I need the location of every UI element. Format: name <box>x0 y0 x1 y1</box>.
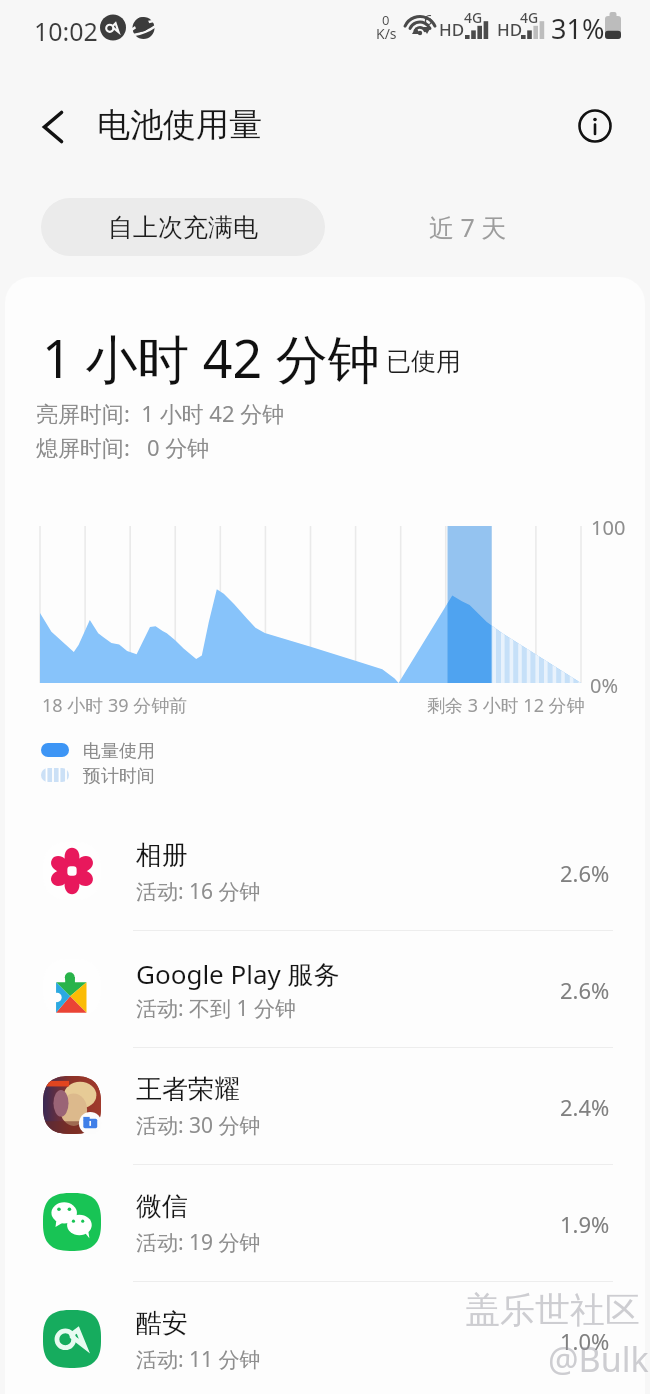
staticText: 活动: 16 分钟 <box>136 877 261 906</box>
staticText: 亮屏时间: 1 小时 42 分钟 <box>36 398 285 428</box>
staticText: 31% <box>551 10 605 47</box>
staticText: 100 <box>591 514 626 541</box>
staticText: 2.6% <box>560 858 610 888</box>
button[interactable]: 微信 <box>0 1165 650 1282</box>
staticText: 4G <box>464 8 483 27</box>
staticText: 0% <box>590 672 619 699</box>
staticText: 酷安 <box>136 1307 188 1340</box>
staticText: 预计时间 <box>83 765 155 788</box>
staticText: 活动: 30 分钟 <box>136 1111 261 1140</box>
staticText: 18 小时 39 分钟前 <box>42 693 188 718</box>
staticText: 盖乐世社区 <box>465 1288 640 1332</box>
staticText: 微信 <box>136 1190 188 1223</box>
staticText: HD <box>497 18 523 41</box>
button[interactable]: Google Play 服务 <box>0 931 650 1048</box>
staticText: 1.9% <box>560 1209 610 1239</box>
button[interactable]: 相册 <box>0 814 650 931</box>
staticText: 6 <box>424 9 433 29</box>
staticText: 4G <box>520 8 539 27</box>
button[interactable]: Information <box>570 101 620 151</box>
staticText: 活动: 11 分钟 <box>136 1345 261 1374</box>
staticText: 相册 <box>136 839 188 872</box>
staticText: 活动: 19 分钟 <box>136 1228 261 1257</box>
button[interactable]: 酷安 <box>0 1282 650 1394</box>
button[interactable]: Back <box>26 100 80 154</box>
staticText: K/s <box>376 24 397 43</box>
staticText: 10:02 <box>34 14 98 48</box>
staticText: 已使用 <box>386 346 461 377</box>
staticText: 2.4% <box>560 1092 610 1122</box>
staticText: 王者荣耀 <box>136 1073 240 1106</box>
staticText: 1.0% <box>560 1326 610 1356</box>
button[interactable]: 近 7 天 <box>355 198 580 256</box>
staticText: 活动: 不到 1 分钟 <box>136 994 297 1023</box>
staticText: 电池使用量 <box>97 104 262 146</box>
staticText: 2.6% <box>560 975 610 1005</box>
staticText: 电量使用 <box>83 740 155 763</box>
staticText: 熄屏时间: 0 分钟 <box>36 432 210 462</box>
staticText: 近 7 天 <box>429 210 507 244</box>
staticText: 自上次充满电 <box>108 212 258 243</box>
staticText: 0 <box>382 11 390 29</box>
staticText: @Bulk <box>548 1336 649 1382</box>
staticText: Google Play 服务 <box>136 956 340 992</box>
staticText: 1 小时 42 分钟 <box>42 322 380 393</box>
button[interactable]: 王者荣耀 <box>0 1048 650 1165</box>
staticText: 剩余 3 小时 12 分钟 <box>427 693 585 718</box>
staticText: HD <box>439 18 465 41</box>
button[interactable]: 自上次充满电 <box>41 198 325 256</box>
